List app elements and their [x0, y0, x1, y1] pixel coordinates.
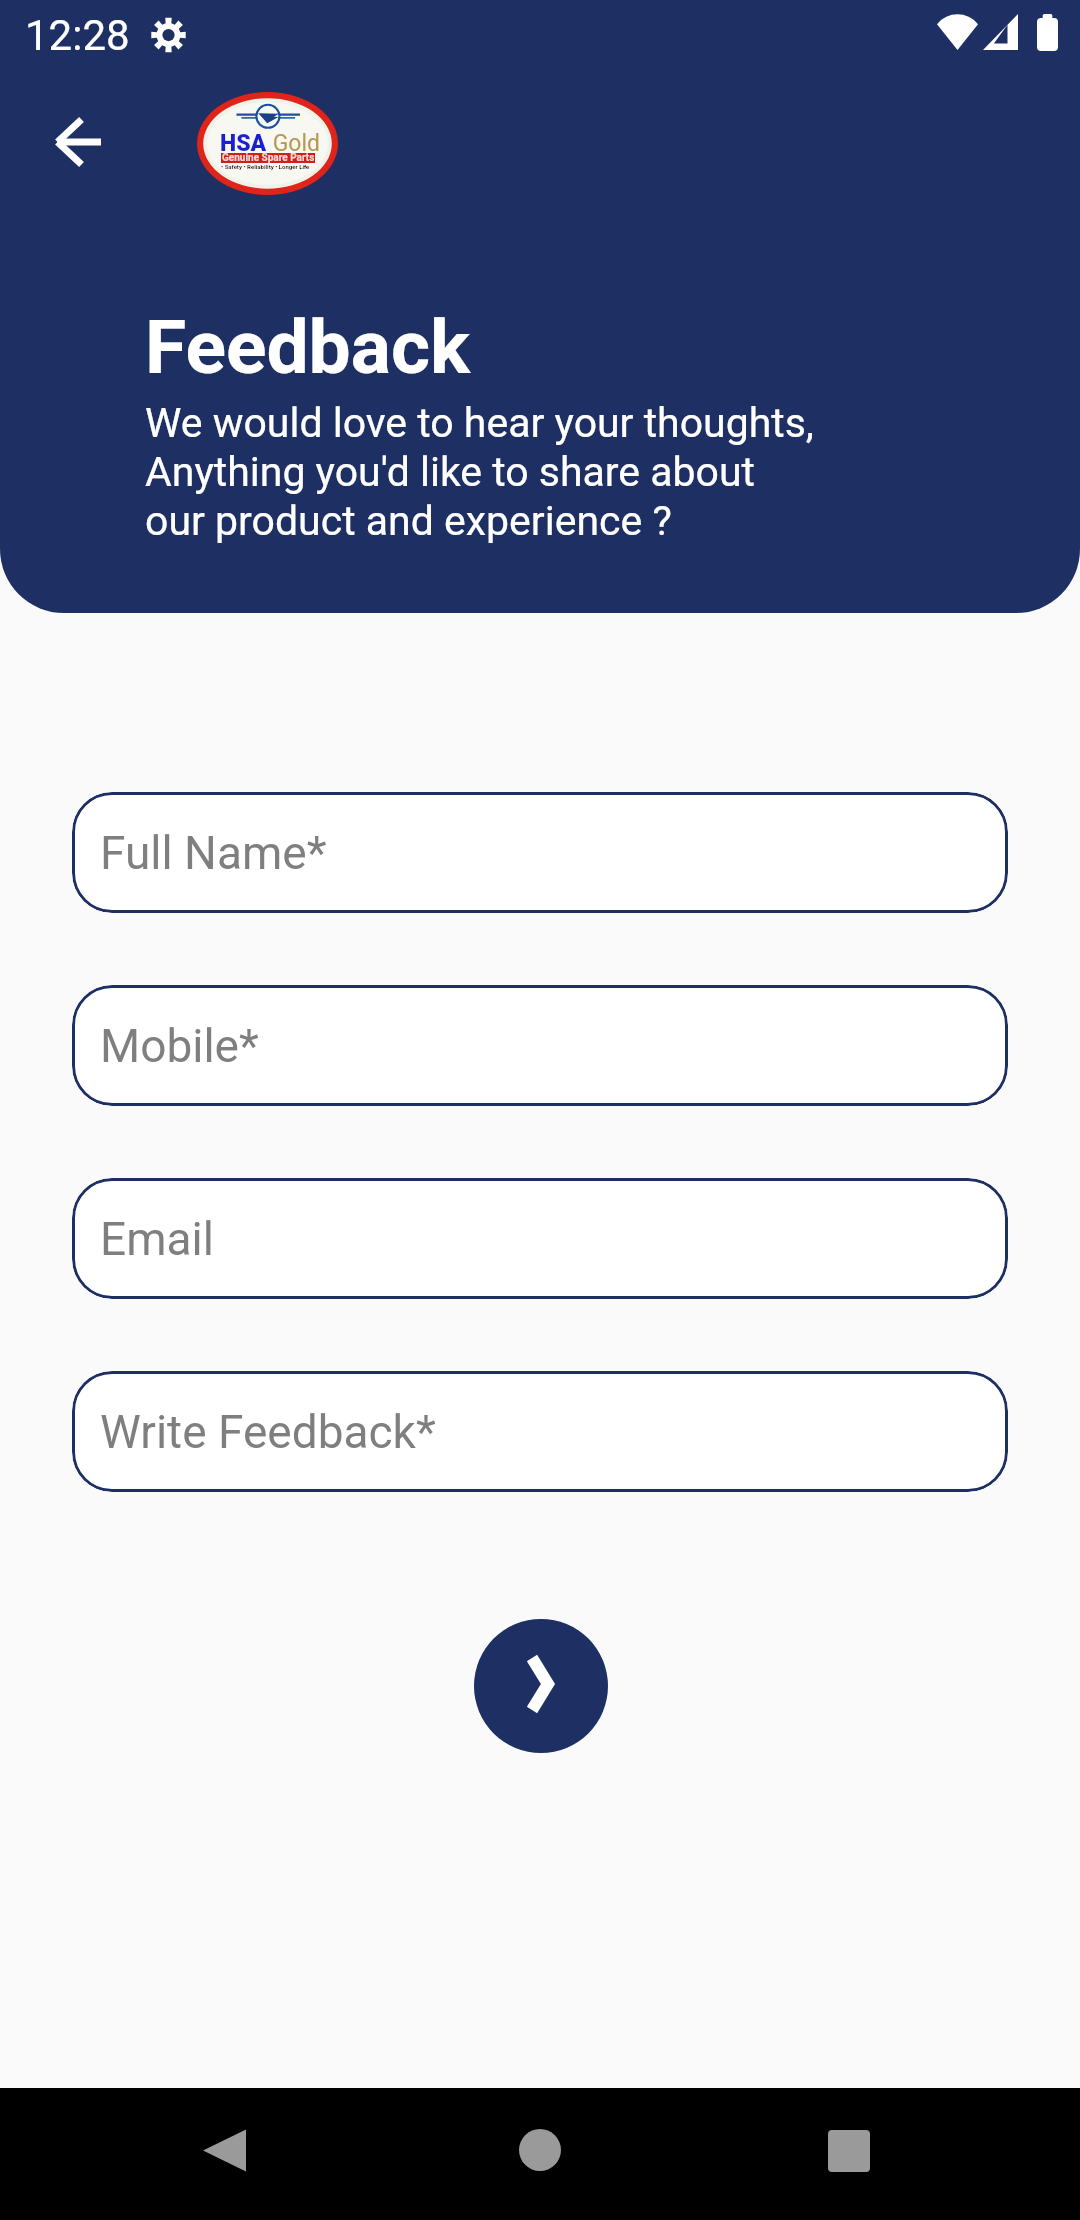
staticText: HSA: [220, 130, 267, 157]
button[interactable]: Back: [173, 2104, 276, 2204]
staticText: Genuine Spare Parts: [222, 152, 315, 164]
button[interactable]: Full Name*: [72, 792, 1008, 913]
staticText: 12:28: [25, 11, 130, 60]
button[interactable]: Recent apps: [798, 2104, 900, 2204]
staticText: We would love to hear your thoughts, Any…: [145, 399, 814, 545]
button[interactable]: Back: [32, 95, 126, 189]
button[interactable]: Email: [72, 1178, 1008, 1299]
button[interactable]: Mobile*: [72, 985, 1008, 1106]
button[interactable]: Submit: [474, 1619, 608, 1753]
staticText: Full Name*: [100, 826, 327, 880]
staticText: • Safety • Reliability • Longer Life: [221, 163, 310, 170]
button[interactable]: Write Feedback*: [72, 1371, 1008, 1492]
staticText: Write Feedback*: [100, 1405, 436, 1459]
button[interactable]: Home: [489, 2104, 591, 2204]
staticText: Gold: [267, 130, 321, 157]
staticText: Feedback: [145, 303, 471, 391]
staticText: Email: [100, 1212, 214, 1266]
staticText: Mobile*: [100, 1019, 259, 1073]
